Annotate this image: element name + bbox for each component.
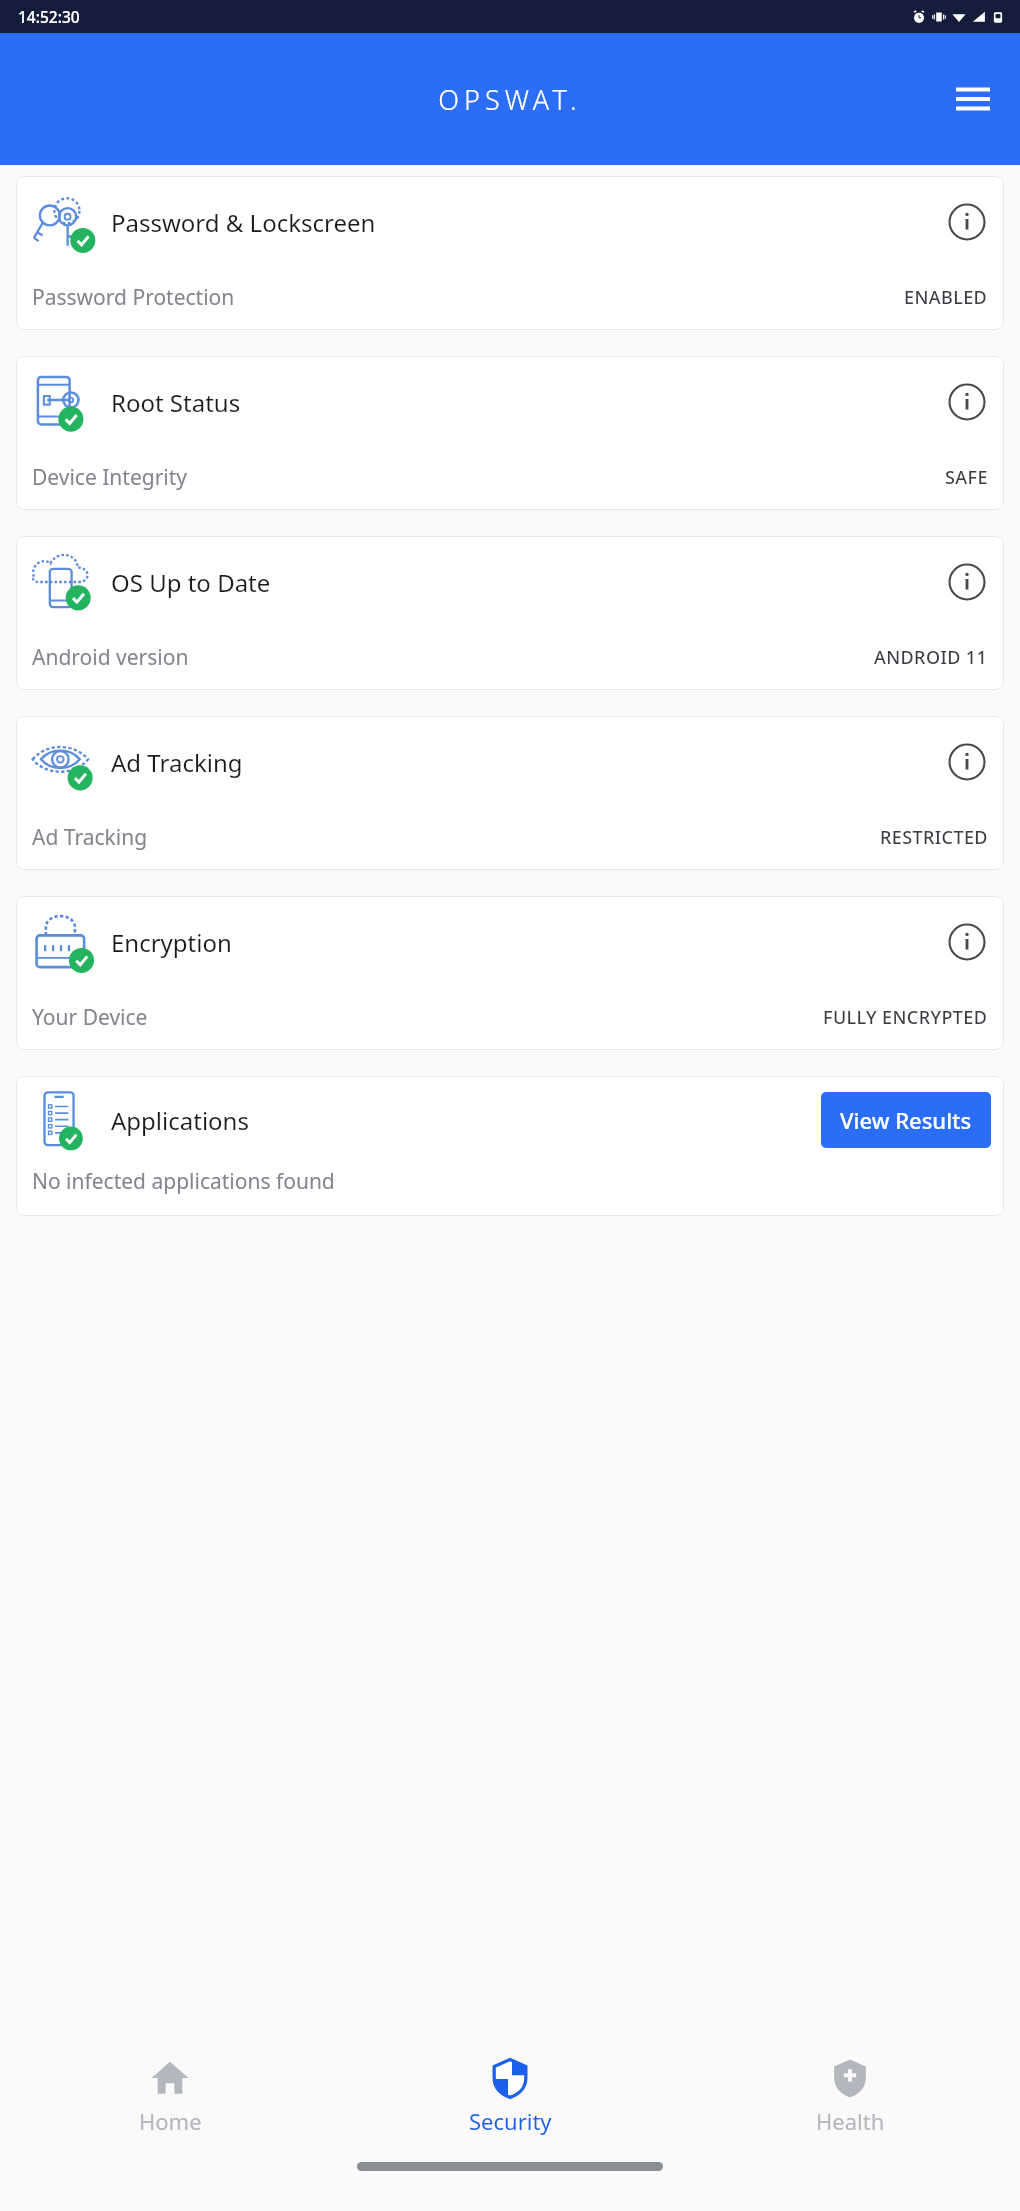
staticText: ANDROID 11 xyxy=(874,645,988,670)
staticText: Applications xyxy=(111,1104,249,1137)
staticText: FULLY ENCRYPTED xyxy=(823,1005,988,1030)
button[interactable]: Root Status xyxy=(16,356,1004,510)
button[interactable]: Encryption xyxy=(16,896,1004,1050)
staticText: Home xyxy=(139,2106,202,2136)
staticText: 14:52:30 xyxy=(18,6,80,27)
staticText: Encryption xyxy=(111,926,232,959)
button[interactable]: More info about OS Up to Date xyxy=(944,559,990,605)
staticText: Ad Tracking xyxy=(111,746,243,779)
staticText: Ad Tracking xyxy=(32,823,148,852)
staticText: View Results xyxy=(840,1105,972,1135)
staticText: No infected applications found xyxy=(32,1167,335,1196)
staticText: Android version xyxy=(32,643,189,672)
staticText: Password & Lockscreen xyxy=(111,206,376,239)
button[interactable]: More info about Root Status xyxy=(944,379,990,425)
staticText: SAFE xyxy=(945,465,988,490)
button[interactable]: Applications xyxy=(16,1076,1004,1216)
button[interactable]: Health xyxy=(680,2050,1020,2142)
button[interactable]: Ad Tracking xyxy=(16,716,1004,870)
button[interactable]: Security xyxy=(340,2050,680,2142)
staticText: Your Device xyxy=(32,1003,148,1032)
button[interactable]: Menu xyxy=(942,68,1004,130)
button[interactable]: OS Up to Date xyxy=(16,536,1004,690)
staticText: ENABLED xyxy=(904,285,988,310)
staticText: Device Integrity xyxy=(32,463,188,492)
button[interactable]: Password & Lockscreen xyxy=(16,176,1004,330)
button[interactable]: More info about Password & Lockscreen xyxy=(944,199,990,245)
staticText: OS Up to Date xyxy=(111,566,271,599)
staticText: OPSWAT. xyxy=(438,81,582,118)
staticText: Root Status xyxy=(111,386,241,419)
staticText: Health xyxy=(816,2106,885,2136)
button[interactable]: More info about Encryption xyxy=(944,919,990,965)
staticText: RESTRICTED xyxy=(880,825,988,850)
button[interactable]: Home xyxy=(0,2050,340,2142)
staticText: Security xyxy=(469,2106,552,2136)
button[interactable]: View Results xyxy=(821,1092,991,1148)
staticText: Password Protection xyxy=(32,283,235,312)
button[interactable]: More info about Ad Tracking xyxy=(944,739,990,785)
